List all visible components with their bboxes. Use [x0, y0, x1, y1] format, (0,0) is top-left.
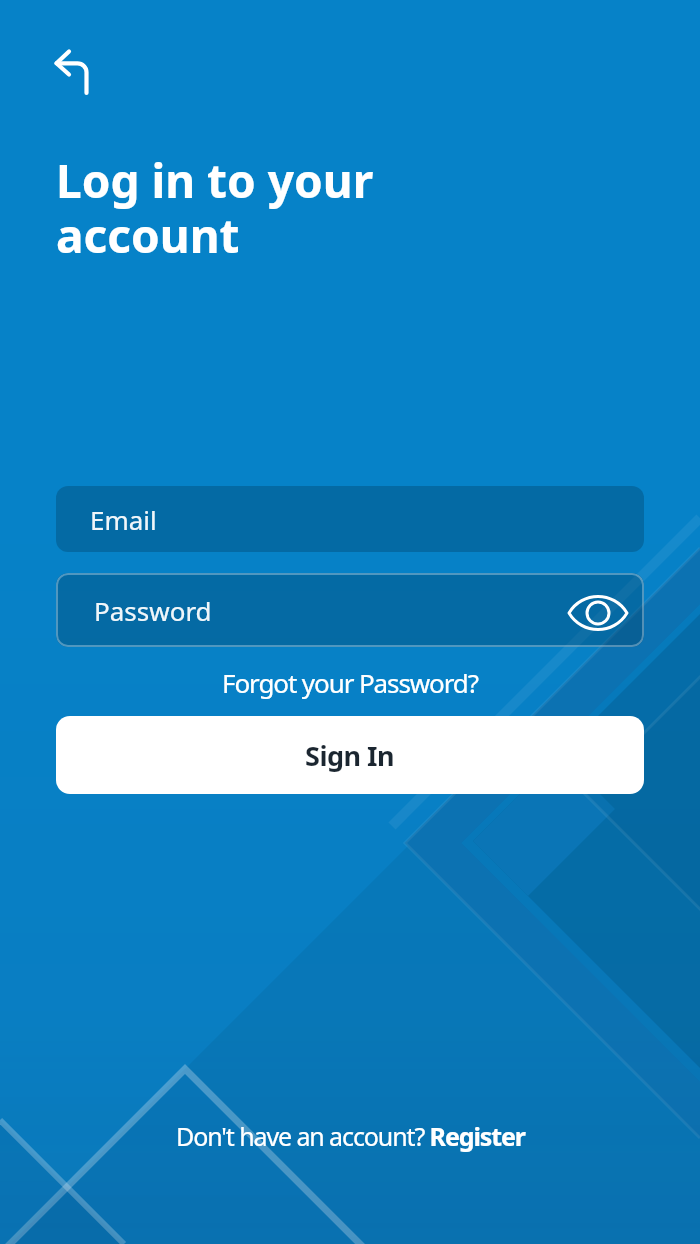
button[interactable]: Password	[56, 573, 644, 647]
button[interactable]	[40, 36, 96, 92]
button[interactable]: Email	[56, 486, 644, 552]
staticText: Email	[90, 502, 157, 537]
button[interactable]: Don't have an account? Register	[0, 1110, 700, 1162]
button[interactable]: Forgot your Password?	[0, 660, 700, 704]
staticText: Sign In	[305, 737, 395, 774]
staticText: Log in to your account	[56, 149, 374, 267]
staticText: Password	[94, 593, 212, 628]
button[interactable]: Sign In	[56, 716, 644, 794]
staticText: Don't have an account? Register	[176, 1119, 525, 1153]
staticText: Forgot your Password?	[222, 665, 478, 700]
